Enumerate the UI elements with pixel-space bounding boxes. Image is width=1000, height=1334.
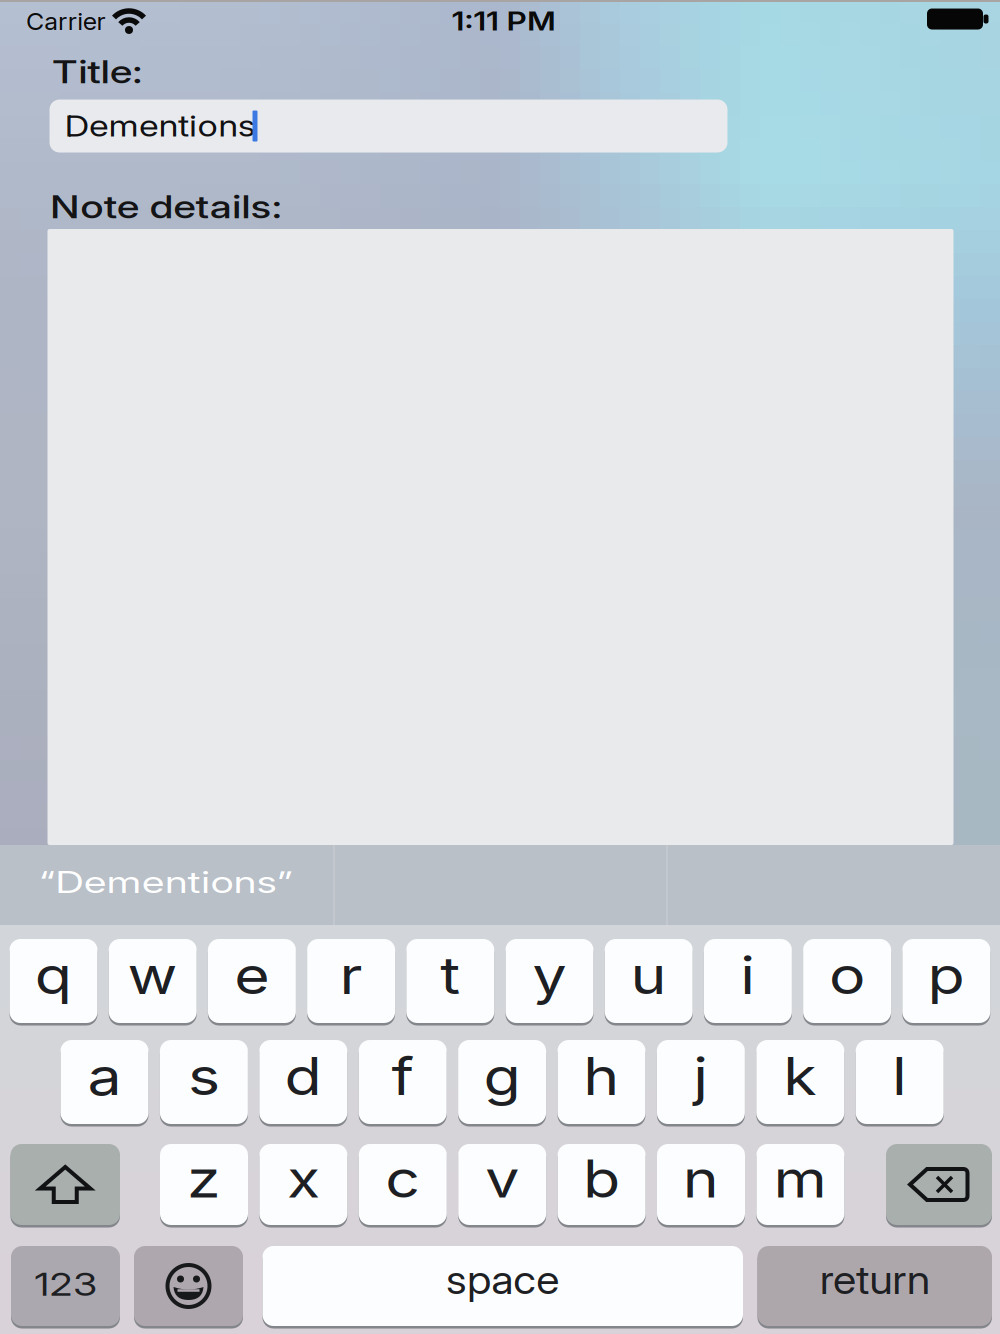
button[interactable]: space bbox=[262, 1246, 743, 1329]
button[interactable]: g bbox=[458, 1040, 546, 1127]
button[interactable] bbox=[134, 1246, 243, 1329]
button[interactable]: p bbox=[902, 939, 990, 1026]
staticText: “Dementions” bbox=[72, 864, 260, 900]
button[interactable]: z bbox=[160, 1144, 248, 1228]
staticText: g bbox=[486, 1044, 518, 1107]
staticText: i bbox=[741, 943, 754, 1006]
button[interactable]: b bbox=[558, 1144, 646, 1228]
staticText: n bbox=[685, 1147, 716, 1210]
button[interactable]: u bbox=[605, 939, 693, 1026]
button[interactable]: j bbox=[657, 1040, 745, 1127]
staticText: j bbox=[694, 1044, 707, 1107]
button[interactable]: h bbox=[557, 1040, 645, 1127]
staticText: 123 bbox=[40, 1265, 90, 1303]
staticText: x bbox=[289, 1147, 317, 1210]
button[interactable]: Dementions bbox=[49, 99, 727, 152]
staticText: Dementions bbox=[64, 109, 221, 143]
button[interactable]: n bbox=[657, 1144, 745, 1228]
staticText: Note details: bbox=[50, 188, 227, 225]
staticText: q bbox=[37, 943, 69, 1006]
staticText: m bbox=[777, 1147, 823, 1210]
staticText: u bbox=[633, 943, 664, 1006]
button[interactable]: y bbox=[505, 939, 593, 1026]
staticText: f bbox=[393, 1044, 412, 1107]
button[interactable]: c bbox=[359, 1144, 447, 1228]
button[interactable]: l bbox=[856, 1040, 944, 1127]
button[interactable]: 123 bbox=[11, 1246, 120, 1329]
staticText: 1:11 PM bbox=[463, 7, 545, 36]
button[interactable]: v bbox=[458, 1144, 546, 1228]
staticText: b bbox=[586, 1147, 618, 1210]
button[interactable]: e bbox=[208, 939, 296, 1026]
button[interactable]: x bbox=[259, 1144, 347, 1228]
button[interactable]: w bbox=[109, 939, 197, 1026]
button[interactable]: o bbox=[803, 939, 891, 1026]
button[interactable]: “Dementions” bbox=[1, 845, 331, 925]
button[interactable]: q bbox=[9, 939, 97, 1026]
staticText: e bbox=[237, 943, 267, 1006]
staticText: v bbox=[488, 1147, 517, 1210]
button[interactable]: r bbox=[307, 939, 395, 1026]
staticText: c bbox=[388, 1147, 418, 1210]
staticText: p bbox=[930, 943, 962, 1006]
staticText: a bbox=[90, 1044, 119, 1107]
staticText: l bbox=[893, 1044, 906, 1107]
staticText: y bbox=[535, 943, 564, 1006]
button[interactable]: t bbox=[406, 939, 494, 1026]
button[interactable]: i bbox=[704, 939, 792, 1026]
button[interactable]: d bbox=[259, 1040, 347, 1127]
button[interactable] bbox=[886, 1144, 992, 1228]
button[interactable]: s bbox=[160, 1040, 248, 1127]
button[interactable]: return bbox=[757, 1246, 992, 1329]
button[interactable]: m bbox=[756, 1144, 844, 1228]
button[interactable] bbox=[10, 1144, 120, 1228]
button[interactable]: f bbox=[359, 1040, 447, 1127]
staticText: s bbox=[190, 1044, 217, 1107]
staticText: Title: bbox=[52, 53, 121, 90]
button[interactable]: k bbox=[756, 1040, 844, 1127]
staticText: d bbox=[287, 1044, 319, 1107]
staticText: r bbox=[341, 943, 361, 1006]
button[interactable]: a bbox=[60, 1040, 148, 1127]
staticText: k bbox=[786, 1044, 815, 1107]
staticText: z bbox=[189, 1147, 218, 1210]
staticText: t bbox=[442, 943, 459, 1006]
staticText: w bbox=[131, 943, 174, 1006]
staticText: o bbox=[832, 943, 863, 1006]
staticText: return bbox=[825, 1257, 925, 1303]
staticText: space bbox=[451, 1257, 554, 1303]
staticText: Carrier bbox=[26, 7, 101, 36]
staticText: h bbox=[586, 1044, 617, 1107]
